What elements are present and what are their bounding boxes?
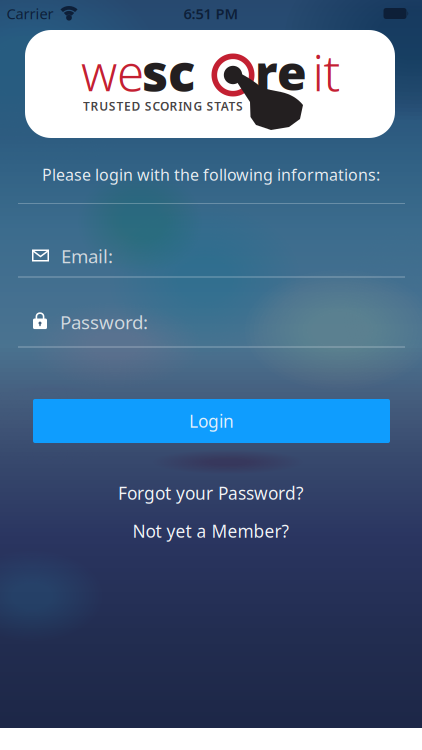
button[interactable]: Not yet a Member? xyxy=(106,516,316,546)
staticText: Login xyxy=(189,409,234,432)
staticText: TRUSTED SCORING STATS xyxy=(83,98,243,114)
button[interactable]: Email: xyxy=(18,232,404,280)
button[interactable]: Password: xyxy=(18,298,404,346)
staticText: Please login with the following informat… xyxy=(42,164,380,185)
staticText: Forgot your Password? xyxy=(118,481,304,504)
staticText: Password: xyxy=(60,310,148,334)
staticText: it xyxy=(312,39,340,105)
staticText: Carrier xyxy=(6,4,53,23)
button[interactable]: Login xyxy=(33,399,390,443)
button[interactable]: we xyxy=(25,30,395,138)
staticText: 6:51 PM xyxy=(183,4,238,23)
staticText: we xyxy=(81,39,144,105)
staticText: re xyxy=(255,40,307,104)
staticText: Email: xyxy=(61,244,113,268)
staticText: Not yet a Member? xyxy=(132,519,289,542)
button[interactable]: Forgot your Password? xyxy=(91,478,331,508)
staticText: sc xyxy=(142,38,195,105)
